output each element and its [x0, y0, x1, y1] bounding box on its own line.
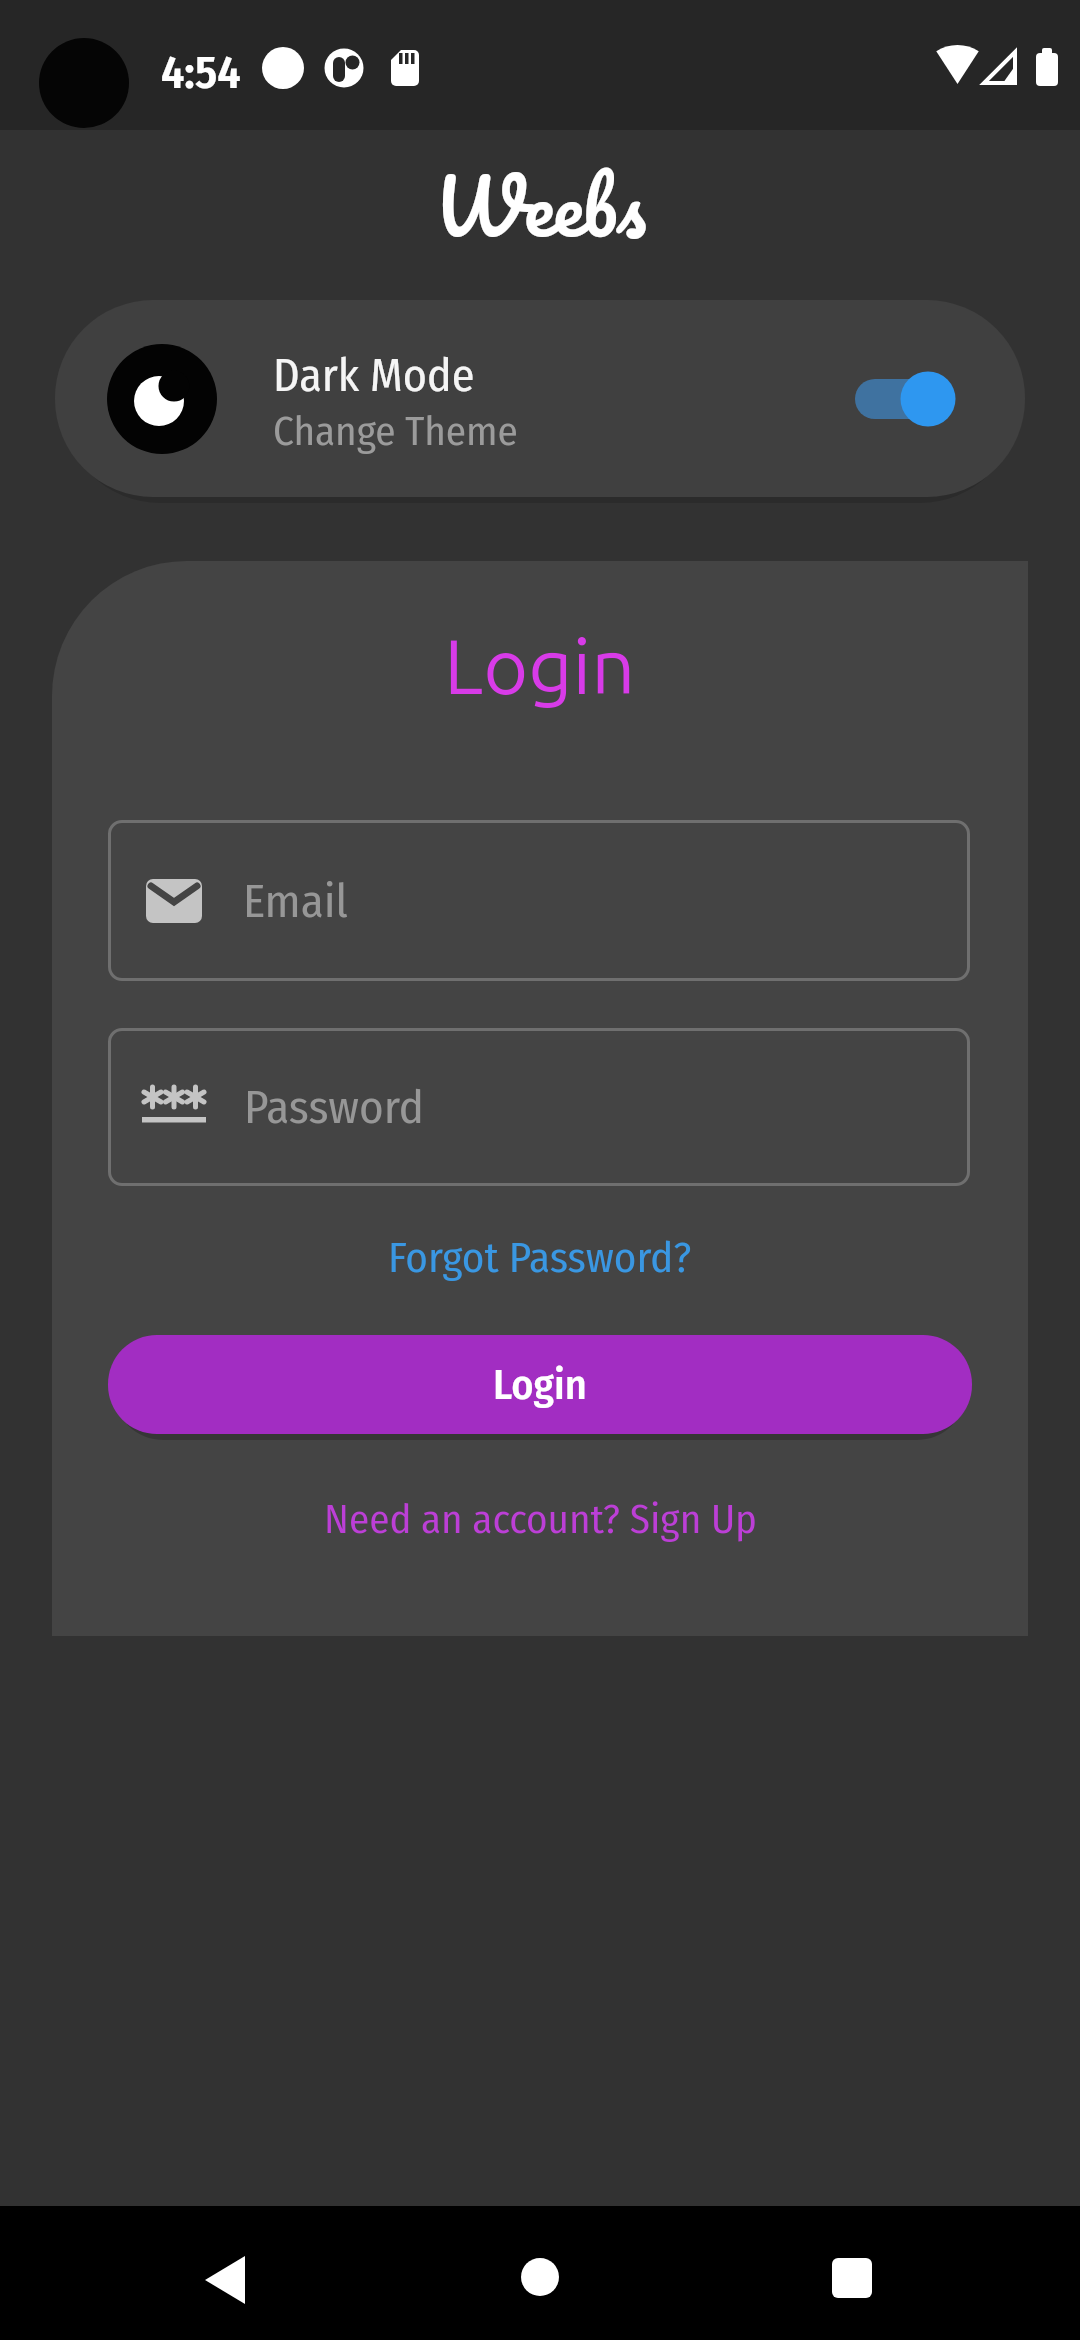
button[interactable]: Need an account? Sign Up: [324, 1495, 757, 1544]
staticText: Email: [243, 873, 348, 929]
staticText: Login: [493, 1360, 587, 1410]
button[interactable]: Email: [108, 820, 970, 981]
staticText: 4:54: [161, 45, 241, 100]
staticText: Login: [444, 622, 636, 708]
staticText: Change Theme: [273, 407, 518, 456]
button[interactable]: [360, 2206, 720, 2340]
button[interactable]: [855, 371, 957, 427]
staticText: Need an account? Sign Up: [324, 1495, 757, 1544]
button[interactable]: Forgot Password?: [388, 1232, 692, 1284]
button[interactable]: [720, 2206, 1080, 2340]
button[interactable]: Dark Mode: [55, 300, 1025, 497]
button[interactable]: Login: [108, 1335, 972, 1434]
staticText: Password: [244, 1079, 424, 1135]
staticText: Forgot Password?: [388, 1232, 692, 1284]
button[interactable]: Password: [108, 1028, 970, 1186]
staticText: Dark Mode: [273, 348, 475, 403]
staticText: Weebs: [434, 141, 647, 271]
button[interactable]: [0, 2206, 360, 2340]
